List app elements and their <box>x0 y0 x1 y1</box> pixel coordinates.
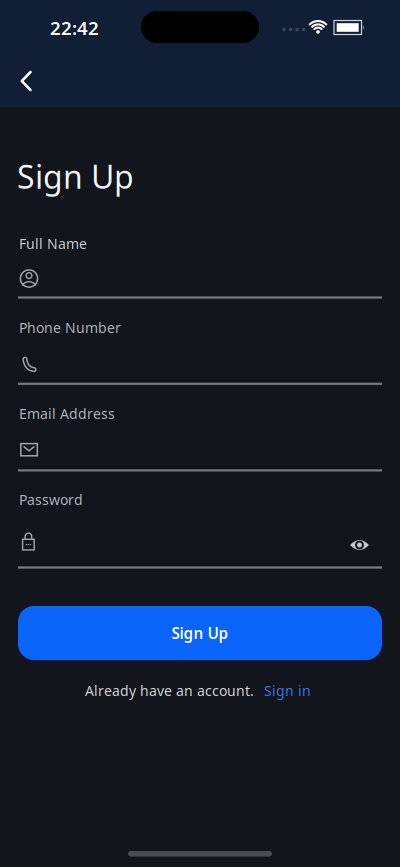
button[interactable]: Show password <box>337 523 381 567</box>
staticText: Phone Number <box>19 318 121 337</box>
staticText: 22:42 <box>50 15 99 40</box>
button[interactable]: Sign in <box>264 681 311 700</box>
button[interactable]: Sign Up <box>18 606 382 660</box>
staticText: Already have an account. <box>85 681 254 700</box>
staticText: Password <box>19 490 83 509</box>
staticText: Email Address <box>19 404 115 423</box>
staticText: Sign Up <box>171 623 228 643</box>
staticText: Sign Up <box>17 155 134 197</box>
staticText: Full Name <box>19 234 87 253</box>
staticText: Sign in <box>264 681 311 700</box>
button[interactable]: Back <box>4 59 48 103</box>
